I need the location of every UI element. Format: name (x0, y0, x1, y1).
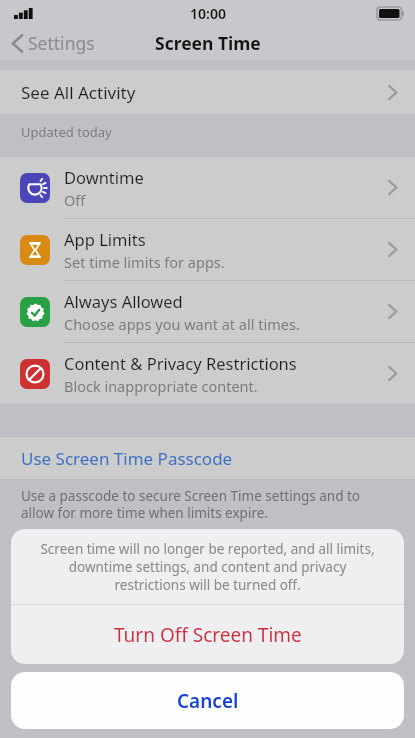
staticText: Set time limits for apps. (64, 252, 225, 272)
staticText: Updated today (21, 123, 112, 141)
other: Always Allowed (24, 301, 47, 324)
staticText: Always Allowed (64, 290, 183, 312)
button[interactable]: Use Screen Time Passcode (0, 437, 415, 479)
staticText: Use a passcode to secure Screen Time set… (21, 487, 391, 522)
other: App Limits (24, 239, 46, 261)
staticText: Settings (28, 31, 95, 55)
staticText: Off (64, 190, 86, 210)
staticText: See All Activity (21, 81, 136, 104)
button[interactable]: Settings (0, 27, 103, 59)
button[interactable]: Downtime (0, 157, 415, 218)
staticText: Turn Off Screen Time (114, 622, 302, 648)
staticText: Screen time will no longer be reported, … (33, 540, 382, 594)
staticText: Screen Time (155, 31, 261, 55)
button[interactable]: Cancel (11, 672, 404, 729)
button[interactable]: App Limits (0, 219, 415, 280)
staticText: App Limits (64, 228, 146, 250)
staticText: Use Screen Time Passcode (21, 447, 233, 470)
button[interactable]: See All Activity (0, 70, 415, 114)
staticText: 10:00 (190, 4, 226, 23)
staticText: Cancel (177, 688, 239, 714)
staticText: Content & Privacy Restrictions (64, 352, 297, 374)
other: Content & Privacy Restrictions (24, 363, 46, 385)
button[interactable]: Always Allowed (0, 281, 415, 342)
button[interactable]: Content & Privacy Restrictions (0, 343, 415, 404)
staticText: Block inappropriate content. (64, 376, 258, 396)
button[interactable]: Turn Off Screen Time (11, 605, 404, 664)
staticText: Choose apps you want at all times. (64, 314, 300, 334)
staticText: Downtime (64, 166, 144, 188)
other: Downtime (24, 177, 46, 199)
